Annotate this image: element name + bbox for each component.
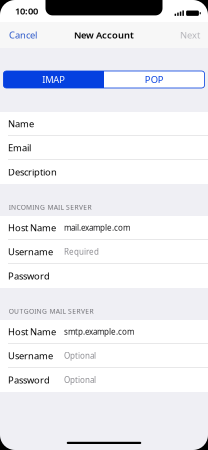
button[interactable]: Password [0, 368, 208, 392]
staticText: IMAP [42, 73, 65, 86]
staticText: Required [64, 246, 99, 257]
button[interactable]: Name [0, 112, 208, 136]
staticText: 10:00 [15, 5, 38, 17]
staticText: Email [8, 141, 31, 154]
staticText: Optional [64, 350, 96, 361]
staticText: New Account [74, 29, 134, 41]
staticText: Description [8, 166, 57, 178]
button[interactable]: IMAP [3, 71, 104, 88]
staticText: OUTGOING MAIL SERVER [9, 307, 93, 316]
staticText: Password [8, 374, 50, 386]
staticText: POP [145, 73, 164, 86]
staticText: Username [8, 245, 53, 258]
staticText: mail.example.com [64, 222, 130, 233]
staticText: Cancel [9, 29, 37, 41]
staticText: Username [8, 349, 53, 362]
staticText: Next [180, 29, 200, 41]
button[interactable]: Email [0, 136, 208, 160]
staticText: Host Name [8, 325, 56, 338]
button[interactable]: Username [0, 240, 208, 264]
staticText: Optional [64, 375, 96, 385]
button[interactable]: Username [0, 344, 208, 368]
staticText: Host Name [8, 221, 56, 234]
button[interactable]: Host Name [0, 320, 208, 344]
staticText: Name [8, 117, 34, 130]
button[interactable]: Cancel [0, 23, 43, 47]
button[interactable]: Host Name [0, 216, 208, 240]
button[interactable]: Description [0, 160, 208, 184]
button[interactable]: POP [104, 71, 205, 88]
button[interactable]: Password [0, 264, 208, 288]
button[interactable]: Next [174, 23, 208, 47]
staticText: INCOMING MAIL SERVER [9, 203, 91, 212]
staticText: smtp.example.com [64, 326, 134, 337]
staticText: Password [8, 270, 50, 282]
